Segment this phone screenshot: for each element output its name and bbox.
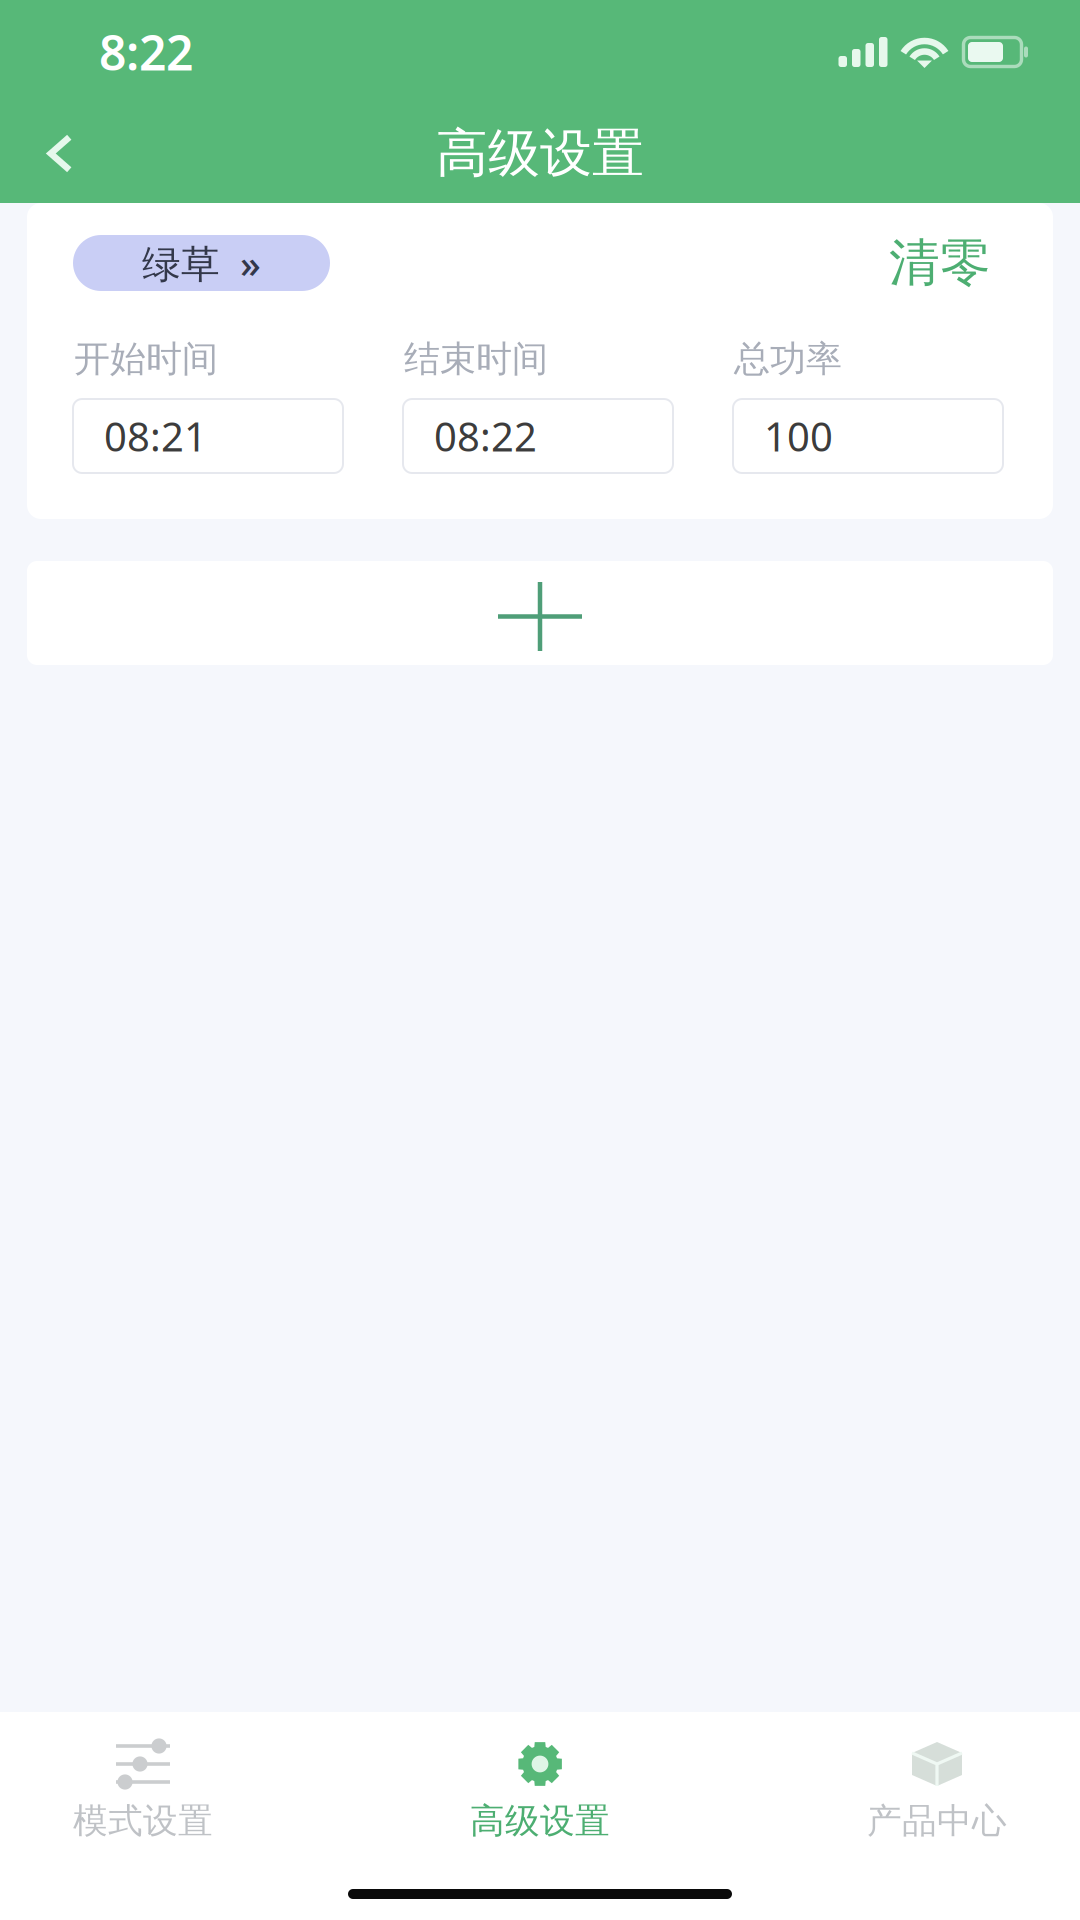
button[interactable]: 高级设置 <box>397 1712 683 1846</box>
button[interactable]: 清零 <box>889 235 1007 291</box>
staticText: 8:22 <box>99 20 193 84</box>
staticText: 总功率 <box>734 337 842 381</box>
button[interactable]: 08:21 <box>73 399 343 473</box>
button[interactable]: Back <box>12 110 108 196</box>
staticText: 高级设置 <box>470 1800 610 1842</box>
staticText: 产品中心 <box>867 1800 1007 1842</box>
staticText: 绿草 » <box>142 237 261 289</box>
staticText: 结束时间 <box>404 337 548 381</box>
button[interactable]: 产品中心 <box>794 1712 1080 1846</box>
button[interactable]: 08:22 <box>403 399 673 473</box>
staticText: 08:21 <box>104 409 207 462</box>
staticText: 高级设置 <box>436 122 644 185</box>
staticText: 模式设置 <box>73 1800 213 1842</box>
button[interactable]: 100 <box>733 399 1003 473</box>
staticText: 100 <box>764 409 833 462</box>
staticText: 开始时间 <box>74 337 218 381</box>
button[interactable]: Add <box>27 561 1053 665</box>
staticText: 清零 <box>889 232 991 294</box>
button[interactable]: 绿草 » <box>73 235 330 291</box>
button[interactable]: 模式设置 <box>0 1712 286 1846</box>
staticText: 08:22 <box>434 409 537 462</box>
